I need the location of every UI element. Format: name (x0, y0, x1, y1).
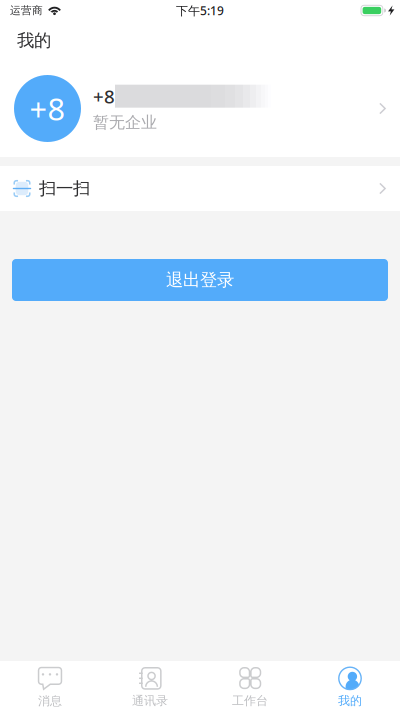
staticText: +8 (93, 84, 115, 109)
button[interactable]: 通讯录 (100, 659, 200, 710)
staticText: 下午5:19 (176, 2, 224, 18)
button[interactable]: 工作台 (200, 659, 300, 710)
staticText: 运营商 (10, 4, 43, 17)
staticText: +8 (29, 88, 65, 129)
button[interactable]: 退出登录 (12, 259, 388, 301)
button[interactable]: 我的 (300, 659, 400, 710)
staticText: 我的 (338, 693, 362, 708)
button[interactable]: 消息 (0, 659, 100, 710)
staticText: 退出登录 (166, 269, 234, 291)
staticText: 消息 (38, 694, 62, 708)
staticText: 我的 (17, 30, 51, 51)
staticText: 通讯录 (132, 693, 168, 708)
staticText: 工作台 (232, 693, 268, 708)
staticText: 扫一扫 (39, 178, 90, 199)
button[interactable]: 扫一扫 (0, 166, 400, 211)
staticText: 暂无企业 (93, 113, 157, 132)
button[interactable]: +8 (0, 60, 400, 157)
